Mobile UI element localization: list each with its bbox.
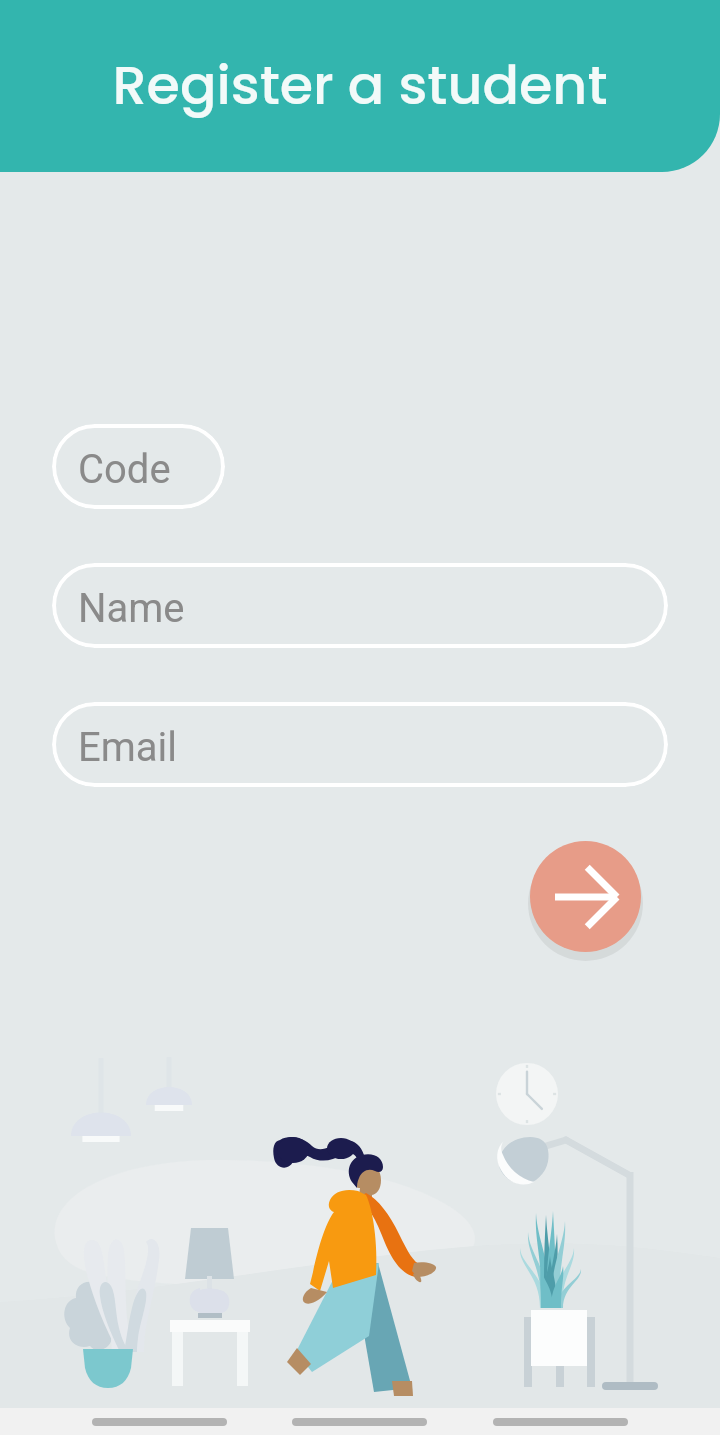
staticText: Email (78, 724, 178, 771)
button[interactable] (92, 1418, 227, 1426)
staticText: Name (78, 585, 185, 632)
button[interactable]: Name (52, 563, 668, 648)
staticText: Code (78, 446, 171, 493)
button[interactable]: Next (530, 841, 641, 952)
button[interactable]: Code (52, 424, 225, 509)
button[interactable] (292, 1418, 427, 1426)
button[interactable]: Email (52, 702, 668, 787)
staticText: Register a student (112, 47, 608, 123)
button[interactable] (493, 1418, 628, 1426)
